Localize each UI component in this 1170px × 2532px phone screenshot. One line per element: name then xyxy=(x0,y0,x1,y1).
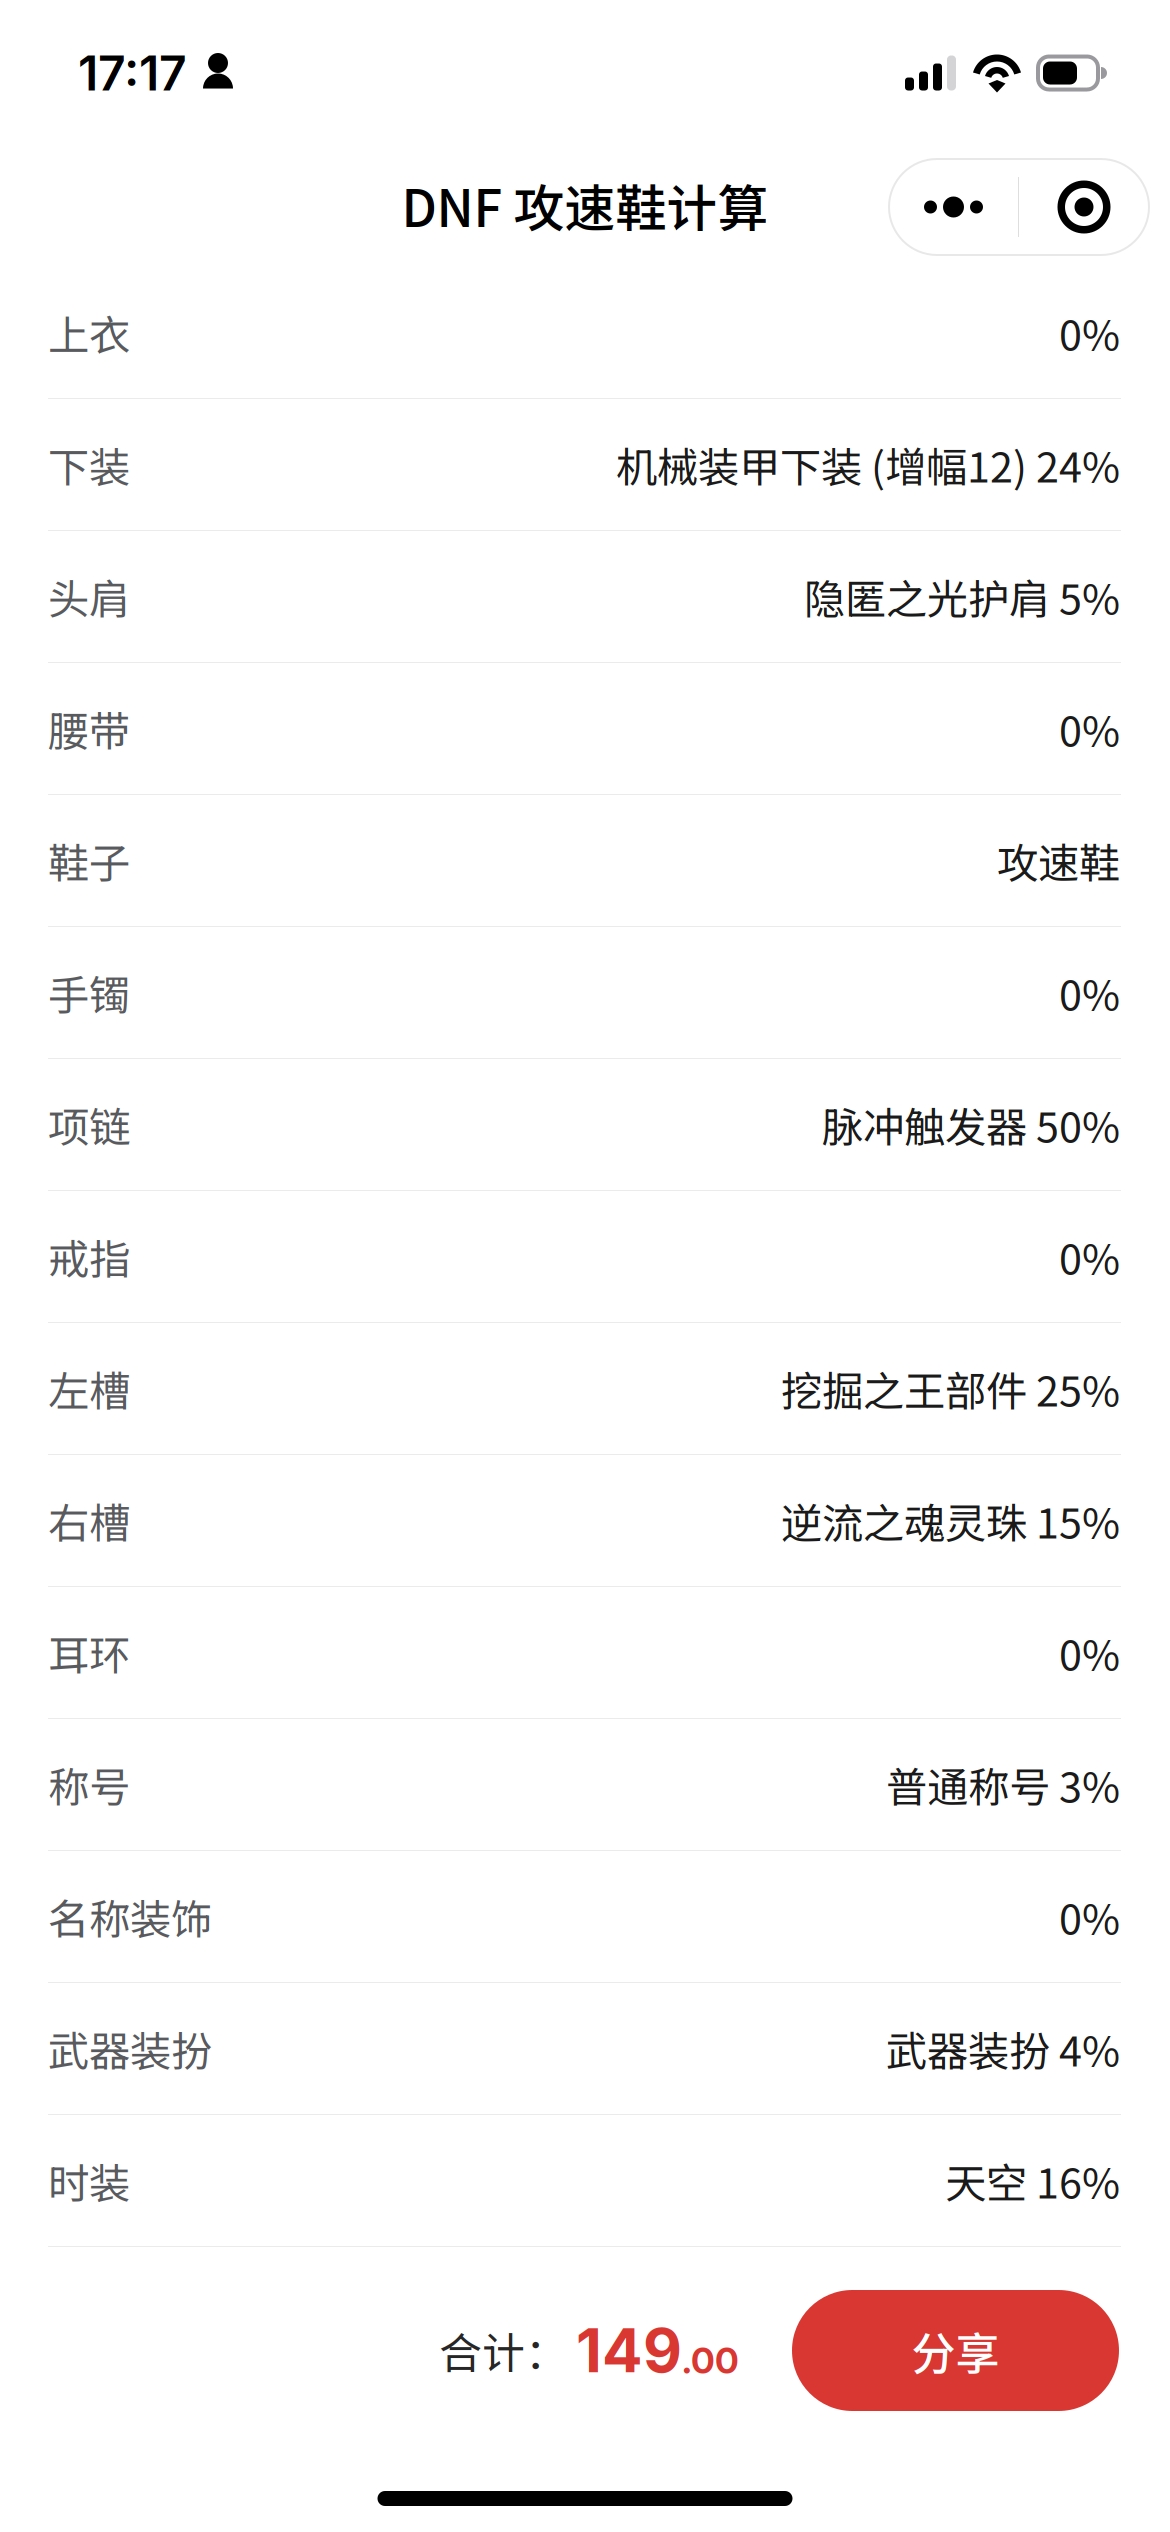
staticText: 项链 xyxy=(48,1095,130,1154)
staticText: 攻速鞋 xyxy=(997,831,1120,890)
staticText: 0% xyxy=(1059,963,1120,1022)
button[interactable]: 右槽 xyxy=(0,1455,1170,1587)
staticText: 0% xyxy=(1059,699,1120,758)
staticText: 17:17 xyxy=(78,44,187,102)
staticText: 戒指 xyxy=(48,1227,130,1286)
staticText: DNF 攻速鞋计算 xyxy=(401,168,768,242)
button[interactable]: 分享 xyxy=(792,2290,1119,2411)
button[interactable]: 下装 xyxy=(0,399,1170,531)
staticText: 称号 xyxy=(48,1755,130,1814)
staticText: 下装 xyxy=(48,435,130,494)
staticText: 脉冲触发器 50% xyxy=(822,1095,1120,1154)
button[interactable]: 项链 xyxy=(0,1059,1170,1191)
button[interactable]: 头肩 xyxy=(0,531,1170,663)
staticText: 武器装扮 xyxy=(48,2019,212,2078)
staticText: 天空 16% xyxy=(945,2151,1120,2210)
staticText: 左槽 xyxy=(48,1359,130,1418)
staticText: 普通称号 3% xyxy=(886,1755,1120,1814)
button[interactable]: 名称装饰 xyxy=(0,1851,1170,1983)
button[interactable]: 戒指 xyxy=(0,1191,1170,1323)
button[interactable]: Close mini program xyxy=(1019,159,1149,255)
staticText: 腰带 xyxy=(48,699,130,758)
button[interactable]: More xyxy=(889,159,1018,255)
button[interactable]: 腰带 xyxy=(0,663,1170,795)
button[interactable]: 称号 xyxy=(0,1719,1170,1851)
staticText: 逆流之魂灵珠 15% xyxy=(781,1491,1120,1550)
staticText: 149 xyxy=(576,2314,682,2387)
button[interactable]: 左槽 xyxy=(0,1323,1170,1455)
staticText: 上衣 xyxy=(48,303,130,362)
button[interactable]: 时装 xyxy=(0,2115,1170,2247)
staticText: .00 xyxy=(682,2339,739,2382)
staticText: 头肩 xyxy=(48,567,130,626)
button[interactable]: 武器装扮 xyxy=(0,1983,1170,2115)
button[interactable]: 耳环 xyxy=(0,1587,1170,1719)
staticText: 鞋子 xyxy=(48,831,130,890)
staticText: 名称装饰 xyxy=(48,1887,212,1946)
staticText: 时装 xyxy=(48,2151,130,2210)
staticText: 机械装甲下装 (增幅12) 24% xyxy=(616,435,1120,494)
staticText: 0% xyxy=(1059,1227,1120,1286)
button[interactable]: 鞋子 xyxy=(0,795,1170,927)
staticText: 武器装扮 4% xyxy=(886,2019,1120,2078)
staticText: 分享 xyxy=(911,2319,999,2382)
staticText: 右槽 xyxy=(48,1491,130,1550)
staticText: 0% xyxy=(1059,303,1120,362)
staticText: 0% xyxy=(1059,1887,1120,1946)
staticText: 耳环 xyxy=(48,1623,130,1682)
staticText: 隐匿之光护肩 5% xyxy=(804,567,1120,626)
staticText: 0% xyxy=(1059,1623,1120,1682)
button[interactable]: 手镯 xyxy=(0,927,1170,1059)
staticText: 手镯 xyxy=(48,963,130,1022)
button[interactable]: 上衣 xyxy=(0,267,1170,399)
staticText: 挖掘之王部件 25% xyxy=(781,1359,1120,1418)
staticText: 合计： xyxy=(439,2320,568,2381)
